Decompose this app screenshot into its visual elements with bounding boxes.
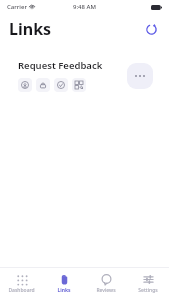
staticText: 9:48 AM [73, 3, 96, 11]
button[interactable]: Links [43, 268, 85, 300]
staticText: Request Feedback [18, 59, 103, 72]
staticText: Carrier [7, 3, 27, 11]
button[interactable]: Reviews [85, 268, 127, 300]
button[interactable]: Share [18, 78, 32, 92]
button[interactable]: Request Feedback [9, 51, 160, 101]
button[interactable]: Dashboard [0, 268, 43, 300]
staticText: Reviews [96, 287, 116, 294]
staticText: Links [9, 18, 52, 40]
button[interactable]: Refresh [141, 19, 161, 39]
button[interactable]: QR code [72, 78, 86, 92]
button[interactable]: Disable [54, 78, 68, 92]
staticText: Settings [138, 287, 158, 294]
staticText: Links [57, 287, 71, 294]
button[interactable]: Lock [36, 78, 50, 92]
staticText: Dashboard [8, 287, 35, 294]
button[interactable]: Settings [127, 268, 169, 300]
button[interactable]: More options [127, 63, 153, 89]
